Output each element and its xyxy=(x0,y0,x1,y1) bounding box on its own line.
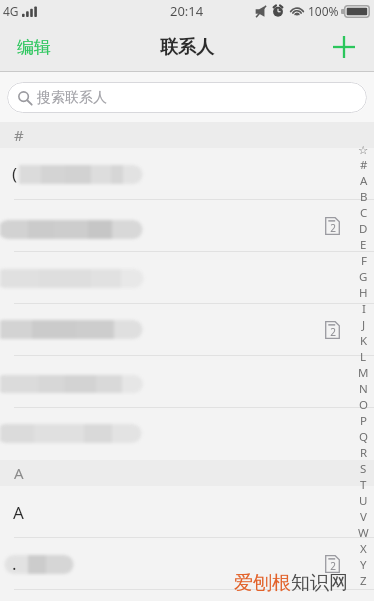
staticText: 爱刨根 xyxy=(234,571,291,595)
staticText: J xyxy=(362,317,366,333)
button[interactable]: 2 xyxy=(0,304,374,356)
button[interactable]: G xyxy=(357,269,370,285)
staticText: M xyxy=(358,365,369,381)
button[interactable]: 2 xyxy=(0,200,374,252)
button[interactable]: M xyxy=(357,365,370,381)
staticText: 20:14 xyxy=(170,2,204,20)
button[interactable]: L xyxy=(357,349,370,365)
staticText: X xyxy=(360,541,367,557)
button[interactable]: A xyxy=(357,173,370,189)
button[interactable] xyxy=(0,252,374,304)
button[interactable]: K xyxy=(357,333,370,349)
button[interactable]: I xyxy=(357,301,370,317)
staticText: 联系人 xyxy=(160,36,214,59)
staticText: 100% xyxy=(308,3,339,19)
button[interactable]: X xyxy=(357,541,370,557)
staticText: B xyxy=(360,189,368,205)
button[interactable]: R xyxy=(357,445,370,461)
staticText: A xyxy=(13,501,24,524)
button[interactable]: A xyxy=(0,486,374,538)
staticText: . xyxy=(12,552,17,575)
button[interactable]: O xyxy=(357,397,370,413)
staticText: A xyxy=(14,463,24,483)
staticText: Z xyxy=(360,573,367,589)
button[interactable]: 搜索联系人 xyxy=(7,82,367,113)
button[interactable]: C xyxy=(357,205,370,221)
button[interactable]: 编辑 xyxy=(0,27,66,68)
button[interactable]: E xyxy=(357,237,370,253)
button[interactable]: U xyxy=(357,493,370,509)
button[interactable]: W xyxy=(357,525,370,541)
staticText: H xyxy=(359,285,368,301)
staticText: 知识网 xyxy=(291,571,348,595)
staticText: ☆ xyxy=(358,143,369,156)
staticText: Q xyxy=(359,429,368,445)
staticText: 2 xyxy=(330,221,336,235)
staticText: ( xyxy=(12,162,18,185)
staticText: O xyxy=(359,397,368,413)
button[interactable] xyxy=(0,408,374,460)
button[interactable]: J xyxy=(357,317,370,333)
staticText: 2 xyxy=(330,325,336,339)
staticText: L xyxy=(360,349,367,365)
button[interactable]: S xyxy=(357,461,370,477)
button[interactable]: N xyxy=(357,381,370,397)
button[interactable]: . xyxy=(0,538,374,590)
staticText: 搜索联系人 xyxy=(37,89,107,107)
staticText: G xyxy=(359,269,368,285)
button[interactable]: Q xyxy=(357,429,370,445)
button[interactable]: B xyxy=(357,189,370,205)
staticText: R xyxy=(360,445,368,461)
button[interactable]: V xyxy=(357,509,370,525)
staticText: F xyxy=(361,253,367,269)
button[interactable]: Add contact xyxy=(319,24,374,70)
staticText: W xyxy=(358,525,369,541)
button[interactable]: Y xyxy=(357,557,370,573)
button[interactable]: H xyxy=(357,285,370,301)
staticText: K xyxy=(360,333,368,349)
staticText: # xyxy=(360,157,368,173)
staticText: S xyxy=(360,461,367,477)
button[interactable]: P xyxy=(357,413,370,429)
staticText: C xyxy=(360,205,368,221)
staticText: A xyxy=(360,173,368,189)
staticText: E xyxy=(360,237,367,253)
button[interactable]: D xyxy=(357,221,370,237)
staticText: 4G xyxy=(3,3,19,19)
button[interactable]: # xyxy=(357,157,370,173)
staticText: N xyxy=(359,381,368,397)
staticText: I xyxy=(362,301,366,317)
staticText: 编辑 xyxy=(17,37,51,58)
staticText: 2 xyxy=(330,559,336,573)
button[interactable]: Z xyxy=(357,573,370,589)
staticText: P xyxy=(360,413,367,429)
staticText: # xyxy=(14,125,24,145)
staticText: U xyxy=(359,493,368,509)
staticText: T xyxy=(360,477,367,493)
staticText: D xyxy=(359,221,368,237)
button[interactable] xyxy=(0,356,374,408)
button[interactable]: T xyxy=(357,477,370,493)
button[interactable]: ☆ xyxy=(357,141,370,157)
staticText: Y xyxy=(360,557,367,573)
button[interactable]: F xyxy=(357,253,370,269)
staticText: V xyxy=(360,509,367,525)
button[interactable]: ( xyxy=(0,148,374,200)
